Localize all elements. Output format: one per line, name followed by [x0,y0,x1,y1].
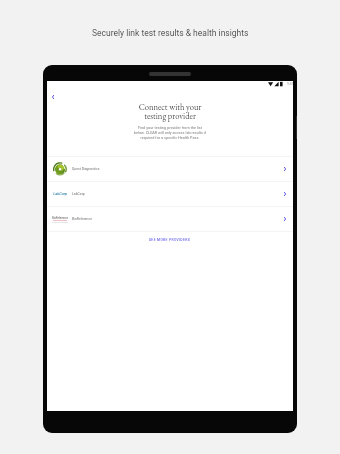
button[interactable]: LabCorp [47,182,293,206]
staticText: Securely link test results & health insi… [92,28,249,38]
staticText: Find your testing provider from the list… [47,125,293,140]
staticText: Connect with your testing provider [47,101,293,121]
staticText: BioReference [52,216,68,219]
button[interactable]: BioReference [47,207,293,231]
staticText: Quest Diagnostics [72,167,100,171]
staticText: LabCorp [53,192,67,196]
staticText: LabCorp [72,192,85,196]
staticText: SEE MORE PROVIDERS [149,238,191,242]
staticText: LABORATORIES [52,221,68,223]
staticText: 9:41 [287,82,294,86]
button[interactable]: SEE MORE PROVIDERS [143,235,197,245]
staticText: BioReference [72,217,93,221]
button[interactable]: Quest Diagnostics [47,157,293,181]
button[interactable]: Back [47,91,59,103]
